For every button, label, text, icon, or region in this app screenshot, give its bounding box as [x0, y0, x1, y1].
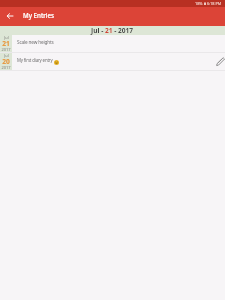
staticText: My first diary entry — [17, 57, 53, 63]
staticText: 6:18 PM — [207, 1, 222, 6]
staticText: Scale new heights — [17, 39, 54, 45]
staticText: Jul — [4, 35, 9, 40]
button[interactable]: Jul — [0, 53, 225, 71]
button[interactable]: Jul — [0, 35, 225, 53]
button[interactable]: Back — [3, 9, 16, 22]
staticText: 18% — [195, 1, 203, 6]
button[interactable]: Edit entry — [211, 55, 225, 69]
staticText: 20 — [2, 57, 10, 66]
staticText: My Entries — [23, 11, 55, 19]
staticText: Jul - 21 - 2017 — [91, 26, 134, 35]
staticText: Jul — [4, 53, 9, 58]
staticText: 2017 — [1, 65, 11, 70]
staticText: 21 — [2, 39, 10, 48]
staticText: 2017 — [1, 47, 11, 52]
